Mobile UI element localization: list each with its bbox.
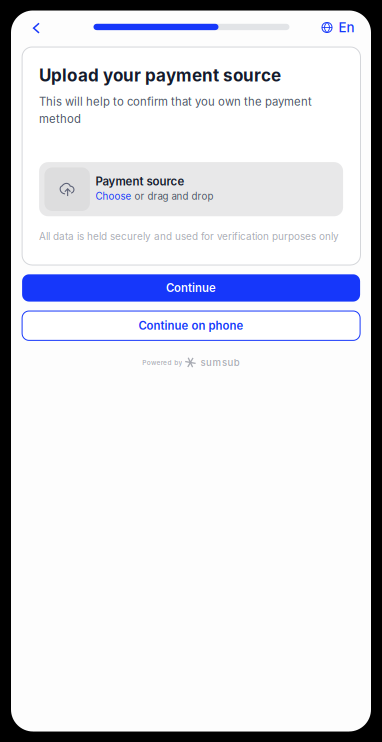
button[interactable]: Language English (312, 16, 354, 38)
staticText: or drag and drop (131, 190, 213, 202)
button[interactable]: Back (24, 17, 48, 39)
staticText: Continue (166, 281, 216, 295)
staticText: sumsub (201, 357, 240, 368)
staticText: Continue on phone (139, 319, 244, 332)
staticText: All data is held securely and used for v… (39, 230, 339, 242)
button[interactable]: Continue on phone (22, 311, 360, 340)
staticText: En (338, 19, 354, 35)
staticText: Payment source (95, 174, 184, 188)
staticText: Choose (95, 190, 131, 202)
staticText: Upload your payment source (39, 65, 281, 86)
staticText: Powered by (142, 358, 182, 366)
staticText: This will help to confirm that you own t… (39, 95, 312, 126)
button[interactable]: Continue (22, 274, 360, 302)
